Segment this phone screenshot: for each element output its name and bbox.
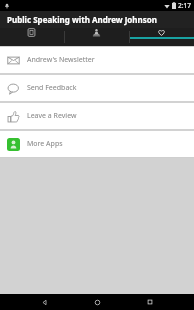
button[interactable]: Lessons bbox=[0, 28, 64, 39]
button[interactable]: Speaker bbox=[65, 28, 129, 39]
button[interactable]: More Apps bbox=[0, 131, 194, 157]
staticText: Leave a Review bbox=[27, 111, 77, 121]
button[interactable]: Home bbox=[88, 294, 106, 310]
button[interactable]: Andrew's Newsletter bbox=[0, 47, 194, 73]
staticText: Public Speaking with Andrew Johnson bbox=[7, 14, 157, 25]
button[interactable]: Back bbox=[35, 294, 53, 310]
button[interactable]: Favorites bbox=[130, 28, 194, 39]
button[interactable]: Leave a Review bbox=[0, 103, 194, 129]
staticText: Andrew's Newsletter bbox=[27, 55, 95, 65]
button[interactable]: Recents bbox=[141, 294, 159, 310]
staticText: Send Feedback bbox=[27, 83, 77, 93]
staticText: More Apps bbox=[27, 139, 63, 149]
button[interactable]: Send Feedback bbox=[0, 75, 194, 101]
staticText: 2:17 bbox=[178, 1, 191, 10]
